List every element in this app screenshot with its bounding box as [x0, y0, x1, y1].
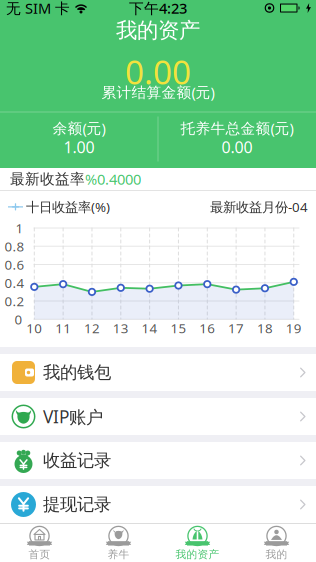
staticText: 我的资产	[175, 548, 219, 561]
staticText: 0.6	[4, 256, 24, 273]
staticText: 首页	[28, 548, 50, 561]
staticText: 我的资产	[116, 17, 200, 44]
staticText: 0.8	[4, 237, 24, 255]
button[interactable]: 我的	[237, 524, 316, 562]
staticText: 收益记录	[43, 450, 111, 471]
staticText: 0.00	[221, 136, 252, 158]
staticText: 下午4:23	[129, 0, 187, 18]
staticText: 提现记录	[43, 494, 111, 515]
staticText: VIP账户	[43, 405, 103, 428]
staticText: 16	[199, 319, 215, 337]
staticText: 19	[286, 319, 302, 337]
button[interactable]: 提现记录	[0, 486, 316, 523]
staticText: 最新收益率	[10, 170, 85, 188]
button[interactable]: 首页	[0, 524, 79, 562]
staticText: 余额(元)	[52, 118, 105, 138]
button[interactable]: 收益记录	[0, 442, 316, 479]
staticText: 0.2	[4, 292, 24, 310]
staticText: 17	[228, 319, 244, 337]
button[interactable]: 我的资产	[158, 524, 237, 562]
staticText: 无 SIM 卡	[6, 0, 70, 18]
staticText: 养牛	[107, 548, 129, 561]
staticText: 15	[170, 319, 186, 337]
staticText: 14	[142, 319, 158, 337]
staticText: 1	[15, 219, 23, 237]
staticText: 18	[257, 319, 273, 337]
staticText: 托养牛总金额(元)	[180, 118, 293, 138]
staticText: 我的钱包	[43, 362, 111, 383]
staticText: 最新收益月份-04	[210, 198, 308, 216]
button[interactable]: VIP账户	[0, 398, 316, 435]
staticText: 12	[84, 319, 100, 337]
staticText: 0.4	[4, 274, 24, 292]
staticText: 我的	[265, 548, 287, 561]
staticText: 10	[26, 319, 42, 337]
staticText: 0	[14, 310, 22, 328]
button[interactable]: 养牛	[79, 524, 158, 562]
staticText: 13	[113, 319, 129, 337]
staticText: 0.00	[125, 49, 191, 94]
staticText: 1.00	[63, 136, 94, 158]
staticText: 累计结算金额(元)	[101, 82, 214, 102]
staticText: %0.4000	[85, 169, 141, 189]
staticText: 11	[55, 319, 71, 337]
button[interactable]: 我的钱包	[0, 354, 316, 391]
staticText: 十日收益率(%)	[26, 198, 110, 216]
